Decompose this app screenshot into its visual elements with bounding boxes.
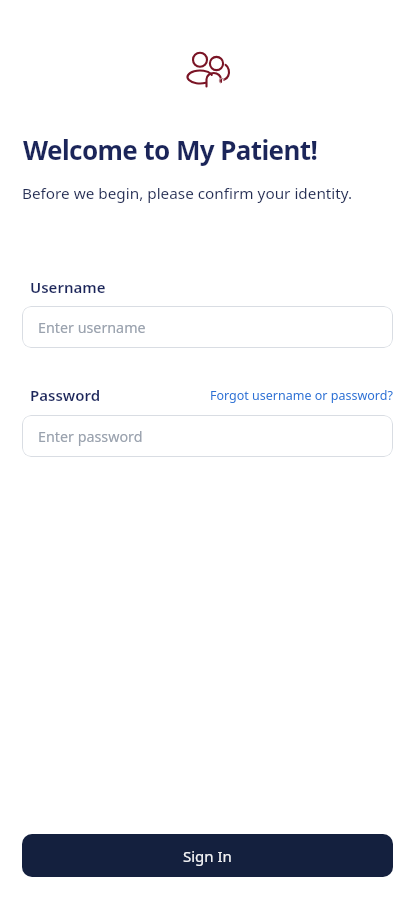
button[interactable]: Sign In (22, 834, 393, 877)
staticText: Username (30, 277, 106, 297)
staticText: Sign In (183, 846, 232, 866)
staticText: Before we begin, please confirm your ide… (22, 183, 353, 204)
button[interactable]: Forgot username or password? (210, 387, 393, 404)
staticText: Enter username (38, 318, 146, 337)
staticText: Forgot username or password? (210, 387, 393, 404)
staticText: Welcome to My Patient! (23, 132, 318, 167)
button[interactable]: Enter username (22, 306, 393, 348)
button[interactable]: Enter password (22, 415, 393, 457)
staticText: Password (30, 385, 101, 405)
staticText: Enter password (38, 427, 143, 446)
